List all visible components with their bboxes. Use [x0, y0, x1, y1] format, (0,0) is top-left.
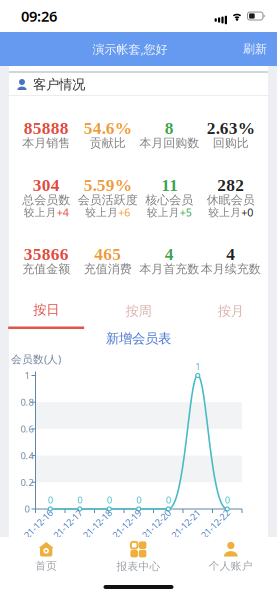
staticText: 0 [48, 494, 53, 506]
staticText: 报表中心 [116, 560, 160, 573]
staticText: 4 [226, 244, 235, 264]
button[interactable]: 刷新 [243, 34, 277, 64]
staticText: 0 [225, 494, 230, 506]
staticText: 本月销售 [22, 136, 70, 150]
staticText: 0.2 [20, 476, 33, 488]
staticText: 核心会员 [145, 193, 193, 207]
button[interactable]: 按周 [92, 303, 185, 319]
staticText: 54.6% [84, 118, 132, 138]
staticText: 0.8 [20, 396, 33, 408]
staticText: 按月 [218, 303, 244, 319]
staticText: 首页 [35, 559, 57, 573]
staticText: 客户情况 [33, 76, 85, 93]
staticText: 0.6 [20, 423, 33, 435]
staticText: 充值消费 [84, 262, 132, 276]
button[interactable]: 按月 [185, 303, 277, 319]
staticText: 较上月 [208, 206, 241, 219]
staticText: 1 [24, 369, 29, 382]
staticText: 282 [217, 175, 244, 195]
staticText: 2.63% [207, 118, 255, 138]
button[interactable]: 个人账户 [185, 541, 277, 573]
staticText: 5.59% [84, 175, 132, 195]
staticText: 35866 [24, 244, 69, 264]
staticText: 按周 [125, 303, 151, 319]
staticText: 21-12-16 [20, 518, 56, 530]
staticText: 回购比 [213, 136, 249, 150]
staticText: 较上月 [147, 206, 180, 219]
staticText: 8 [165, 118, 174, 138]
staticText: 465 [94, 244, 121, 264]
staticText: 85888 [24, 118, 69, 138]
staticText: 较上月 [85, 206, 118, 219]
button[interactable]: 首页 [0, 541, 92, 573]
staticText: 0 [24, 503, 29, 515]
button[interactable]: 报表中心 [92, 541, 185, 573]
staticText: +0 [241, 205, 253, 220]
staticText: 本月回购数 [139, 136, 199, 150]
staticText: 总会员数 [22, 193, 70, 207]
staticText: 11 [161, 175, 177, 195]
staticText: 21-12-17 [50, 518, 86, 530]
staticText: +6 [118, 205, 130, 220]
staticText: 本月续充数 [201, 262, 261, 276]
staticText: 0 [77, 494, 82, 506]
staticText: +4 [57, 205, 69, 220]
staticText: 1 [195, 360, 200, 373]
button[interactable]: 按日 [0, 293, 92, 329]
staticText: 个人账户 [209, 559, 253, 573]
staticText: 充值金额 [22, 262, 70, 276]
staticText: 0 [136, 494, 141, 506]
staticText: 21-12-21 [168, 518, 204, 530]
staticText: +5 [180, 205, 192, 220]
staticText: 09:26 [21, 6, 57, 26]
staticText: 较上月 [24, 206, 57, 219]
staticText: 21-12-22 [197, 518, 233, 530]
staticText: 4 [165, 244, 174, 264]
staticText: 贡献比 [90, 136, 126, 150]
staticText: 21-12-20 [138, 518, 174, 530]
staticText: 演示帐套,您好 [92, 41, 167, 57]
staticText: 新增会员表 [106, 330, 171, 347]
staticText: 0 [107, 494, 112, 506]
staticText: 21-12-19 [109, 518, 145, 530]
staticText: 会员活跃度 [78, 193, 138, 207]
staticText: 本月首充数 [139, 262, 199, 276]
staticText: 按日 [33, 302, 59, 318]
staticText: 刷新 [243, 42, 267, 56]
staticText: 会员数(人) [11, 352, 61, 366]
staticText: 21-12-18 [79, 518, 115, 530]
staticText: 休眠会员 [207, 193, 255, 207]
staticText: 0 [166, 494, 171, 506]
staticText: 304 [33, 175, 60, 195]
staticText: 0.4 [20, 449, 33, 462]
